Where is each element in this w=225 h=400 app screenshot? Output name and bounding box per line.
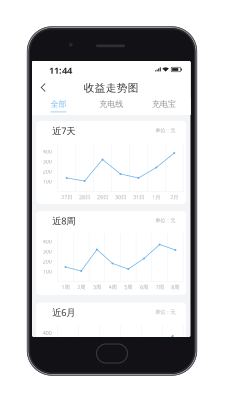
staticText: 单位：元 [155,217,175,224]
staticText: 6周 [140,284,148,291]
staticText: 3月 [106,375,114,382]
staticText: 2月 [85,375,93,382]
staticText: 30日 [115,194,126,201]
staticText: 5月 [148,375,156,382]
staticText: 1月 [64,375,72,382]
staticText: 3周 [93,284,101,291]
staticText: 2月 [170,194,178,201]
staticText: 单位：元 [155,127,175,134]
staticText: 100 [43,268,52,275]
staticText: 充电宝 [152,99,176,109]
staticText: 400 [43,238,52,245]
staticText: 充电线 [99,99,123,109]
staticText: 近8周 [52,215,75,227]
staticText: 单位：元 [155,309,175,315]
button[interactable]: Back [35,79,52,96]
staticText: 4月 [127,375,135,382]
button[interactable]: 全部 [32,97,85,115]
staticText: 100 [43,178,52,185]
staticText: 近6月 [52,306,75,318]
staticText: 8周 [171,284,179,291]
staticText: 28日 [79,194,90,201]
button[interactable]: 充电宝 [138,97,190,115]
staticText: 29日 [97,194,108,201]
staticText: 收益走势图 [84,81,139,94]
staticText: 7周 [156,284,164,291]
staticText: 400 [43,329,52,337]
staticText: 200 [43,168,52,175]
staticText: 全部 [50,99,66,109]
staticText: 5周 [124,284,132,291]
staticText: 11:44 [49,64,72,76]
staticText: 300 [43,158,52,165]
staticText: 6月 [169,375,177,382]
staticText: 4周 [109,284,117,291]
staticText: 300 [43,248,52,255]
staticText: 31日 [133,194,144,201]
staticText: 2周 [77,284,85,291]
staticText: 1月 [152,194,160,201]
staticText: 400 [43,148,52,155]
button[interactable]: 充电线 [85,97,138,115]
staticText: 近7天 [52,125,75,137]
staticText: 200 [43,258,52,265]
staticText: 27日 [61,194,72,201]
staticText: 1周 [61,284,69,291]
